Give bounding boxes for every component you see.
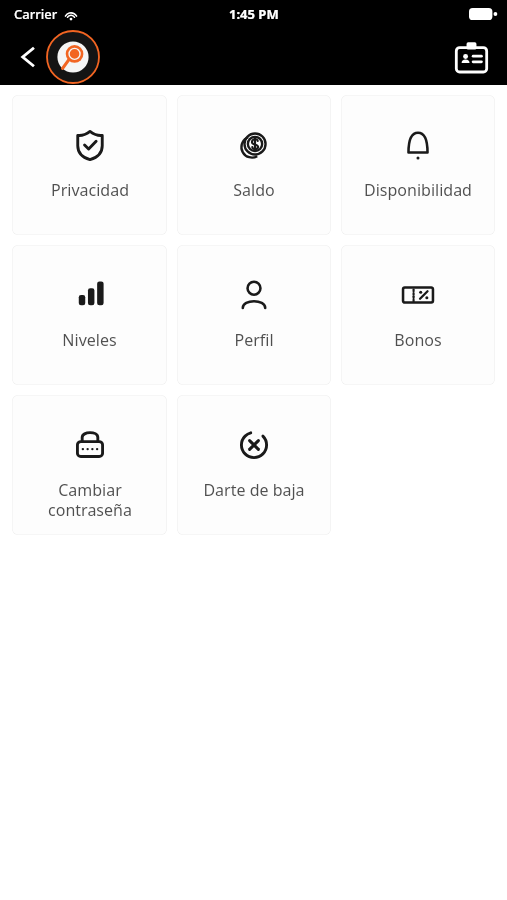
button[interactable]: Darte de baja <box>177 395 331 535</box>
staticText: Cambiar contraseña <box>48 479 132 520</box>
button[interactable]: Cambiar contraseña <box>12 395 167 535</box>
button[interactable]: Perfil <box>177 245 331 385</box>
staticText: Darte de baja <box>203 479 305 501</box>
staticText: Privacidad <box>51 179 129 201</box>
button[interactable]: Bonos <box>341 245 495 385</box>
button[interactable]: Disponibilidad <box>341 95 495 235</box>
button[interactable]: Credencial <box>449 35 493 79</box>
button[interactable]: Niveles <box>12 245 167 385</box>
button[interactable]: Logo <box>46 30 100 84</box>
staticText: Carrier <box>14 5 58 23</box>
staticText: Niveles <box>62 329 117 351</box>
staticText: 1:45 PM <box>229 5 279 23</box>
staticText: Saldo <box>233 179 275 201</box>
staticText: Perfil <box>234 329 274 351</box>
button[interactable]: Back <box>6 35 50 79</box>
staticText: Disponibilidad <box>364 179 472 201</box>
button[interactable]: Privacidad <box>12 95 167 235</box>
staticText: Bonos <box>394 329 442 351</box>
button[interactable]: Saldo <box>177 95 331 235</box>
